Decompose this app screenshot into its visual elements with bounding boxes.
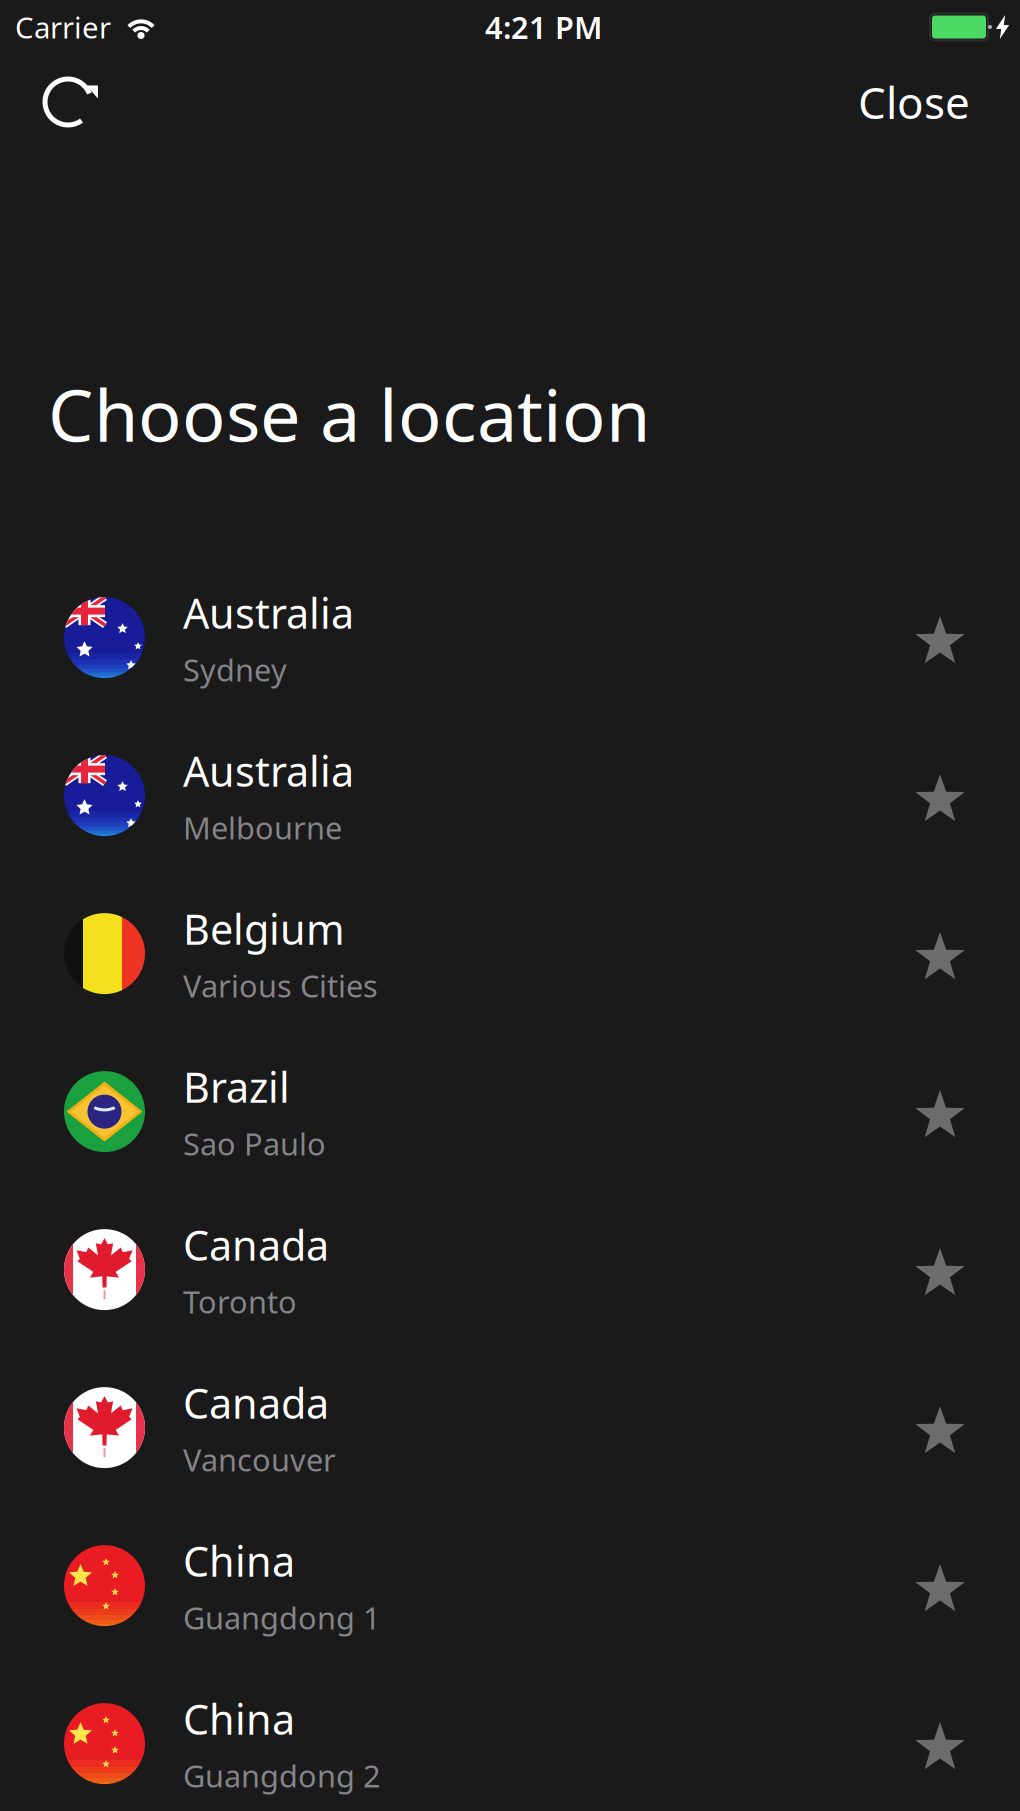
staticText: Guangdong 2 [183, 1755, 381, 1796]
staticText: Australia [183, 743, 354, 798]
staticText: Guangdong 1 [183, 1597, 381, 1638]
staticText: Sydney [183, 649, 287, 690]
staticText: Various Cities [183, 965, 378, 1006]
button[interactable]: Refresh [32, 66, 104, 138]
button[interactable]: Belgium [0, 875, 1020, 1033]
staticText: Brazil [183, 1059, 290, 1114]
button[interactable]: China [0, 1665, 1020, 1811]
staticText: Belgium [183, 901, 345, 956]
staticText: China [183, 1691, 295, 1746]
button[interactable]: Brazil [0, 1033, 1020, 1191]
button[interactable]: Australia [0, 717, 1020, 875]
staticText: Canada [183, 1375, 329, 1430]
staticText: Toronto [183, 1281, 297, 1322]
button[interactable]: Canada [0, 1349, 1020, 1507]
staticText: Vancouver [183, 1439, 336, 1480]
staticText: Canada [183, 1217, 329, 1272]
staticText: Close [858, 73, 970, 131]
staticText: Sao Paulo [183, 1123, 326, 1164]
button[interactable]: Close [848, 63, 980, 141]
button[interactable]: China [0, 1507, 1020, 1665]
staticText: Carrier [15, 7, 111, 46]
staticText: Melbourne [183, 807, 342, 848]
staticText: Choose a location [48, 366, 650, 462]
staticText: 4:21 PM [485, 7, 602, 47]
staticText: Australia [183, 585, 354, 640]
staticText: China [183, 1533, 295, 1588]
button[interactable]: Canada [0, 1191, 1020, 1349]
button[interactable]: Australia [0, 559, 1020, 717]
